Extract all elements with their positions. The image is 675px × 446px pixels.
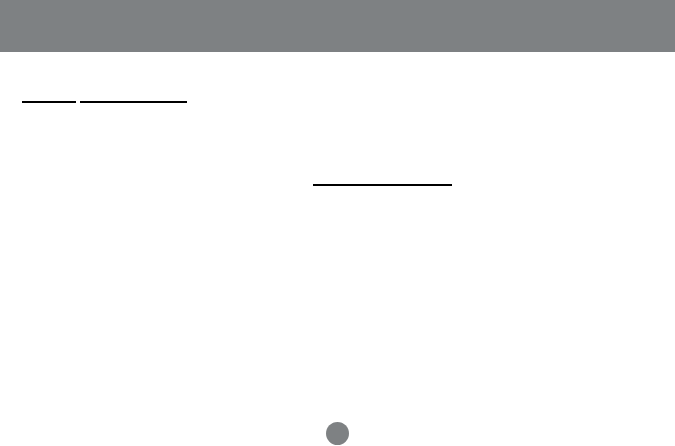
button[interactable]: Action (326, 422, 349, 445)
